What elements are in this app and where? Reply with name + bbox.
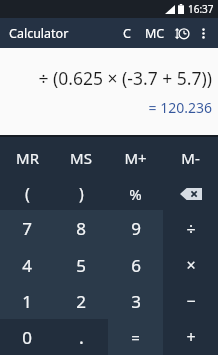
staticText: C	[123, 25, 131, 42]
button[interactable]: 7	[0, 210, 54, 247]
staticText: +	[186, 326, 196, 348]
staticText: 16:37	[188, 2, 214, 16]
button[interactable]: 9	[108, 210, 163, 247]
staticText: M+	[124, 148, 147, 168]
button[interactable]: %	[108, 178, 163, 210]
button[interactable]: 2	[54, 283, 108, 319]
staticText: MR	[16, 148, 39, 168]
staticText: 6	[131, 254, 141, 277]
staticText: .	[79, 325, 84, 350]
staticText: MC	[145, 25, 165, 42]
staticText: ÷	[186, 218, 196, 240]
button[interactable]: History	[171, 22, 193, 44]
button[interactable]: 8	[54, 210, 108, 247]
button[interactable]: More options	[193, 23, 213, 43]
button[interactable]: )	[54, 178, 108, 210]
staticText: = 120.236	[148, 98, 212, 117]
button[interactable]: =	[108, 319, 163, 355]
button[interactable]: ÷	[163, 210, 218, 247]
staticText: %	[129, 184, 142, 204]
staticText: 1	[22, 290, 32, 313]
button[interactable]: MC	[142, 22, 168, 44]
button[interactable]: 3	[108, 283, 163, 319]
staticText: MS	[70, 148, 92, 168]
staticText: −	[186, 290, 196, 312]
button[interactable]: MS	[54, 137, 108, 178]
staticText: M-	[181, 148, 200, 168]
button[interactable]: M-	[163, 137, 218, 178]
staticText: ×	[186, 254, 196, 276]
staticText: 2	[76, 290, 86, 313]
staticText: Calculator	[9, 25, 69, 42]
staticText: =	[131, 327, 140, 347]
button[interactable]: ×	[163, 247, 218, 283]
button[interactable]: MR	[0, 137, 54, 178]
button[interactable]: 5	[54, 247, 108, 283]
button[interactable]: Backspace	[163, 178, 218, 210]
staticText: 7	[22, 217, 32, 240]
button[interactable]: .	[54, 319, 108, 355]
button[interactable]: 6	[108, 247, 163, 283]
button[interactable]: C	[116, 22, 138, 44]
button[interactable]: 4	[0, 247, 54, 283]
button[interactable]: 0	[0, 319, 54, 355]
staticText: 0	[22, 326, 32, 349]
staticText: 9	[131, 217, 141, 240]
staticText: ÷ (0.625 × (-3.7 + 5.7))	[38, 66, 212, 90]
button[interactable]: 1	[0, 283, 54, 319]
button[interactable]: (	[0, 178, 54, 210]
staticText: 5	[76, 254, 86, 277]
staticText: )	[79, 183, 84, 205]
staticText: 8	[76, 217, 86, 240]
staticText: 4	[22, 254, 32, 277]
button[interactable]: M+	[108, 137, 163, 178]
staticText: (	[25, 183, 30, 205]
staticText: 3	[131, 290, 141, 313]
button[interactable]: +	[163, 319, 218, 355]
button[interactable]: Calculator	[9, 25, 69, 42]
button[interactable]: −	[163, 283, 218, 319]
